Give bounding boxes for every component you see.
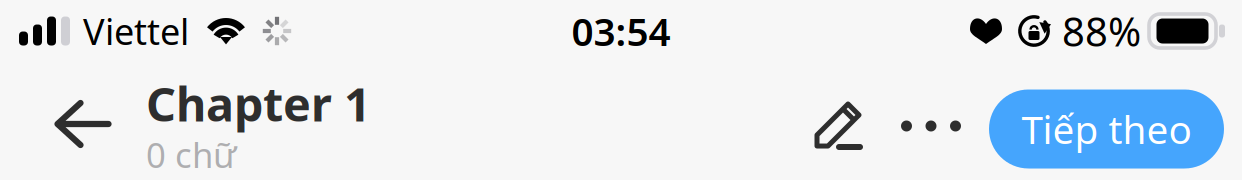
staticText: Tiếp theo [1021,103,1191,155]
button[interactable]: Tiếp theo [989,81,1224,160]
button[interactable]: More options [897,65,989,177]
staticText: 03:54 [571,5,670,57]
button[interactable]: Back [39,65,127,177]
button[interactable]: Edit [819,65,897,177]
staticText: Chapter 1 [146,72,371,134]
staticText: 0 chữ [146,131,236,177]
staticText: Viettel [83,7,189,55]
staticText: 88% [1062,4,1141,57]
